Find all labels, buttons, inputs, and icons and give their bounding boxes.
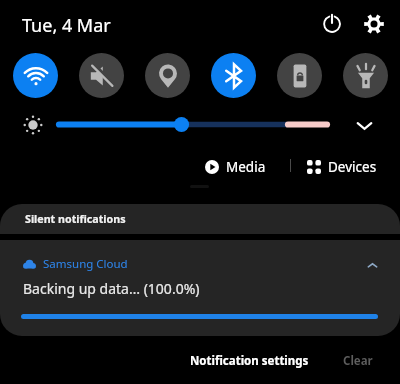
staticText: Backing up data… (100.0%) <box>23 279 200 298</box>
staticText: Notification settings <box>190 353 309 369</box>
staticText: Devices <box>328 158 377 176</box>
staticText: Tue, 4 Mar <box>22 13 111 38</box>
staticText: Clear <box>343 353 373 369</box>
button[interactable]: Notification settings <box>184 348 315 374</box>
button[interactable]: Wi-Fi <box>13 53 58 98</box>
staticText: Silent notifications <box>25 212 126 227</box>
button[interactable]: Location <box>145 53 190 98</box>
button[interactable]: Devices <box>305 155 379 179</box>
button[interactable]: Auto rotate lock <box>277 53 322 98</box>
button[interactable]: Collapse notification <box>358 251 386 279</box>
button[interactable]: Settings <box>359 9 389 39</box>
staticText: Media <box>226 158 266 176</box>
button[interactable]: Expand brightness <box>350 111 378 139</box>
button[interactable]: Clear <box>337 348 379 374</box>
button[interactable]: Power <box>317 9 347 39</box>
button[interactable]: Bluetooth <box>211 53 256 98</box>
button[interactable]: Mute <box>79 53 124 98</box>
button[interactable]: Flashlight <box>343 53 388 98</box>
button[interactable]: Silent notifications <box>0 204 400 234</box>
button[interactable]: Samsung Cloud <box>0 240 400 336</box>
staticText: Samsung Cloud <box>43 256 128 272</box>
button[interactable]: Media <box>203 155 268 179</box>
